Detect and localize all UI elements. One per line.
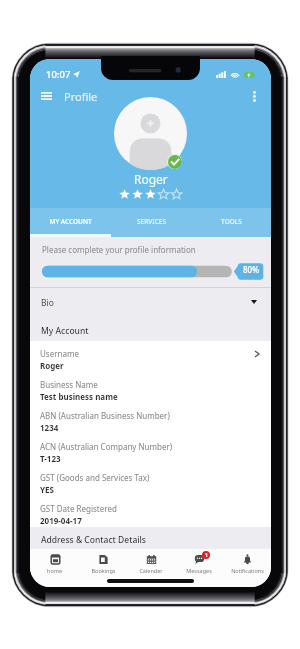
staticText: Messages bbox=[186, 567, 212, 574]
staticText: GST Date Registered bbox=[40, 503, 117, 514]
staticText: ACN (Australian Company Number) bbox=[40, 441, 173, 452]
staticText: Roger bbox=[134, 171, 168, 187]
staticText: Username bbox=[40, 348, 79, 359]
button[interactable]: Profile photo bbox=[114, 97, 187, 170]
staticText: Address & Contact Details bbox=[41, 534, 146, 546]
button[interactable]: Address & Contact Details bbox=[30, 527, 271, 557]
staticText: Notifications bbox=[231, 567, 264, 574]
button[interactable]: Rating 3 of 5 bbox=[118, 189, 183, 199]
button[interactable]: SERVICES bbox=[111, 208, 191, 237]
button[interactable]: home bbox=[30, 549, 79, 587]
button[interactable]: Business Name bbox=[30, 372, 271, 403]
staticText: 2019-04-17 bbox=[40, 515, 82, 526]
staticText: TOOLS bbox=[221, 217, 242, 226]
staticText: 10:07 bbox=[46, 68, 71, 81]
button[interactable]: My Account bbox=[30, 311, 271, 341]
staticText: Profile bbox=[64, 89, 98, 104]
staticText: SERVICES bbox=[137, 217, 166, 226]
button[interactable]: Username bbox=[30, 341, 271, 372]
button[interactable]: MY ACCOUNT bbox=[30, 208, 111, 237]
button[interactable]: Messages bbox=[175, 549, 223, 587]
button[interactable]: Bookings bbox=[79, 549, 127, 587]
button[interactable]: TOOLS bbox=[191, 208, 271, 237]
button[interactable]: More options bbox=[242, 84, 266, 108]
staticText: GST (Goods and Services Tax) bbox=[40, 472, 150, 483]
staticText: MY ACCOUNT bbox=[49, 217, 92, 226]
button[interactable]: GST Date Registered bbox=[30, 496, 271, 527]
staticText: Test business name bbox=[40, 391, 118, 402]
staticText: Calender bbox=[139, 567, 163, 574]
button[interactable]: GST (Goods and Services Tax) bbox=[30, 465, 271, 496]
staticText: 80% bbox=[243, 264, 259, 275]
staticText: Business Name bbox=[40, 379, 98, 390]
staticText: home bbox=[47, 567, 62, 574]
staticText: My Account bbox=[41, 325, 89, 337]
button[interactable]: Bio bbox=[30, 287, 271, 311]
staticText: Roger bbox=[40, 360, 64, 371]
staticText: Bio bbox=[41, 297, 54, 309]
button[interactable]: Calender bbox=[127, 549, 175, 587]
button[interactable]: ACN (Australian Company Number) bbox=[30, 434, 271, 465]
staticText: YES bbox=[40, 484, 54, 495]
staticText: Please complete your profile information bbox=[42, 244, 196, 255]
staticText: 1234 bbox=[40, 422, 59, 433]
staticText: ABN (Australian Business Number) bbox=[40, 410, 170, 421]
staticText: 1 bbox=[205, 552, 208, 559]
staticText: T-123 bbox=[40, 453, 61, 464]
staticText: Bookings bbox=[91, 567, 116, 574]
button[interactable]: ABN (Australian Business Number) bbox=[30, 403, 271, 434]
button[interactable]: Notifications bbox=[223, 549, 271, 587]
button[interactable]: Open navigation menu bbox=[33, 83, 59, 109]
